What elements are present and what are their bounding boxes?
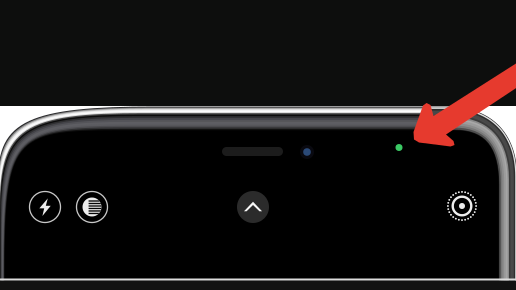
button[interactable]: Live Photo bbox=[442, 186, 482, 226]
button[interactable]: More camera options bbox=[233, 187, 273, 227]
button[interactable]: Night mode bbox=[72, 187, 112, 227]
button[interactable]: Flash bbox=[25, 187, 65, 227]
